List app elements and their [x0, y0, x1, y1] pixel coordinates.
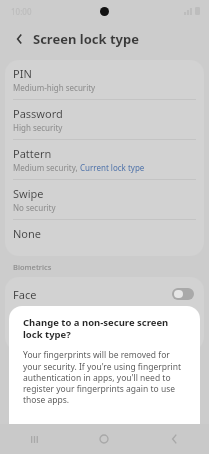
- staticText: Biometrics: [13, 262, 52, 272]
- button[interactable]: None: [5, 220, 204, 256]
- button[interactable]: Home: [69, 424, 139, 454]
- staticText: Cancel: [40, 423, 74, 437]
- button[interactable]: Recents: [0, 424, 69, 454]
- staticText: High security: [13, 122, 63, 133]
- staticText: None: [13, 226, 42, 241]
- button[interactable]: [172, 288, 194, 300]
- staticText: Face: [13, 287, 37, 302]
- staticText: Pattern: [13, 146, 52, 161]
- staticText: Current lock type: [80, 162, 145, 173]
- staticText: Fingerprints: [13, 318, 77, 333]
- button[interactable]: Swipe: [5, 180, 204, 219]
- staticText: 10:00: [11, 6, 32, 17]
- button[interactable]: PIN: [5, 60, 204, 99]
- staticText: Your fingerprints will be removed for yo…: [23, 349, 186, 406]
- staticText: No security: [13, 202, 56, 213]
- staticText: Remove data: [120, 423, 186, 437]
- staticText: Swipe: [13, 186, 44, 201]
- button[interactable]: Password: [5, 100, 204, 139]
- staticText: Password: [13, 106, 63, 121]
- button[interactable]: Navigate up: [9, 29, 29, 49]
- staticText: Registered: [13, 334, 54, 345]
- button[interactable]: Fingerprints: [5, 312, 204, 351]
- button[interactable]: Face: [5, 277, 204, 311]
- staticText: Change to a non-secure screen lock type?: [23, 316, 186, 341]
- staticText: PIN: [13, 66, 32, 81]
- button[interactable]: Cancel: [9, 416, 104, 444]
- button[interactable]: Remove data: [105, 416, 200, 444]
- staticText: Screen lock type: [33, 30, 139, 48]
- staticText: Medium security,: [13, 162, 80, 173]
- button[interactable]: Pattern: [5, 140, 204, 179]
- staticText: Medium-high security: [13, 82, 96, 93]
